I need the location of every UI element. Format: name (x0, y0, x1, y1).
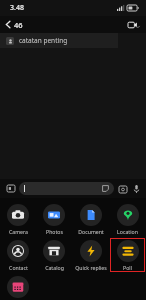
button[interactable]: Poll (110, 238, 145, 272)
button[interactable]: Camera (1, 202, 35, 236)
staticText: Photos (46, 228, 63, 235)
button[interactable]: Location (110, 202, 145, 236)
button[interactable]: Video call (121, 16, 146, 33)
button[interactable]: Document (73, 202, 108, 236)
button[interactable]: Event (1, 274, 35, 299)
button[interactable]: catatan penting (0, 33, 118, 48)
staticText: Location (117, 228, 138, 235)
staticText: 46 (14, 20, 23, 30)
button[interactable]: Contact (1, 238, 35, 272)
staticText: Contact (9, 264, 28, 271)
staticText: Document (78, 228, 104, 235)
button[interactable]: Quick replies (73, 238, 108, 272)
staticText: Poll (123, 264, 132, 271)
staticText: Quick replies (75, 264, 107, 271)
staticText: Camera (9, 228, 28, 235)
staticText: 3.48 (10, 3, 24, 13)
button[interactable]: Camera (117, 183, 129, 195)
button[interactable]: Back (0, 16, 27, 33)
button[interactable]: Catalog (37, 238, 71, 272)
staticText: Catalog (45, 264, 64, 271)
button[interactable]: Voice message (130, 183, 142, 195)
staticText: catatan penting (19, 36, 68, 45)
button[interactable]: Stickers (4, 182, 17, 195)
button[interactable]: Photos (37, 202, 71, 236)
button[interactable] (19, 182, 114, 195)
